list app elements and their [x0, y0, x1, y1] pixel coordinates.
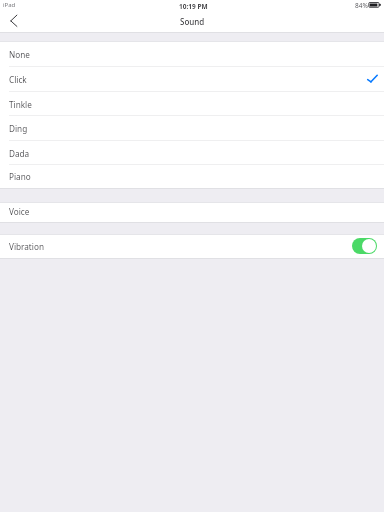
staticText: Vibration [9, 241, 44, 252]
staticText: Ding [9, 123, 28, 134]
button[interactable]: None [0, 42, 384, 67]
button[interactable]: Piano [0, 165, 384, 188]
staticText: iPad [3, 1, 16, 9]
staticText: Dada [9, 148, 30, 159]
staticText: Voice [9, 206, 30, 217]
button[interactable]: Tinkle [0, 92, 384, 116]
staticText: Sound [180, 16, 205, 27]
staticText: 10:19 PM [179, 2, 208, 11]
button[interactable]: Voice [0, 203, 384, 223]
staticText: None [9, 49, 30, 60]
button[interactable]: Dada [0, 141, 384, 166]
button[interactable]: Vibration [0, 235, 384, 258]
staticText: Piano [9, 171, 31, 182]
button[interactable]: Vibration on [352, 238, 377, 254]
staticText: 84% [355, 1, 368, 10]
staticText: Click [9, 74, 27, 85]
button[interactable]: Back [2, 12, 24, 32]
button[interactable]: Ding [0, 116, 384, 141]
staticText: Tinkle [9, 99, 32, 110]
button[interactable]: Click [0, 67, 384, 92]
other: Battery 84 percent [368, 2, 381, 9]
